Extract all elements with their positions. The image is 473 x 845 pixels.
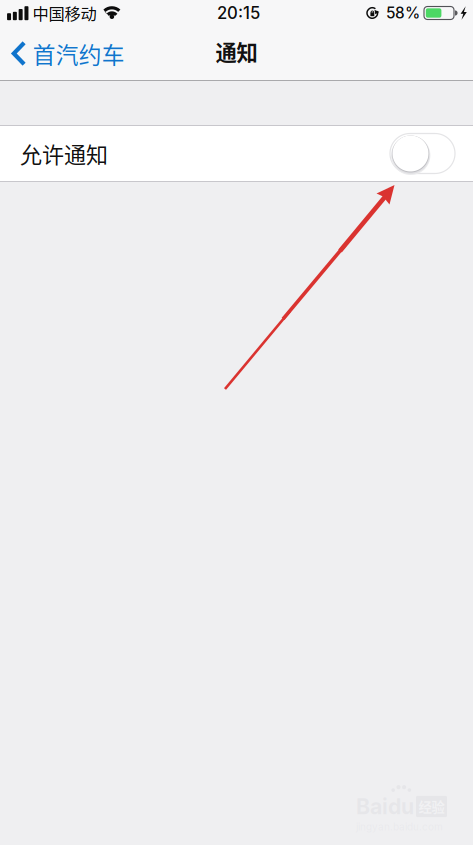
staticText: 通知: [215, 36, 257, 67]
staticText: Baidu: [356, 794, 414, 819]
button[interactable]: 返回 首汽约车: [0, 26, 135, 80]
button[interactable]: 允许通知: [0, 125, 473, 182]
staticText: 首汽约车: [33, 37, 125, 70]
staticText: 58%: [386, 4, 420, 22]
staticText: 中国移动: [32, 1, 96, 25]
staticText: 20:15: [217, 3, 260, 23]
staticText: 允许通知: [20, 138, 108, 169]
staticText: 经验: [418, 797, 444, 816]
